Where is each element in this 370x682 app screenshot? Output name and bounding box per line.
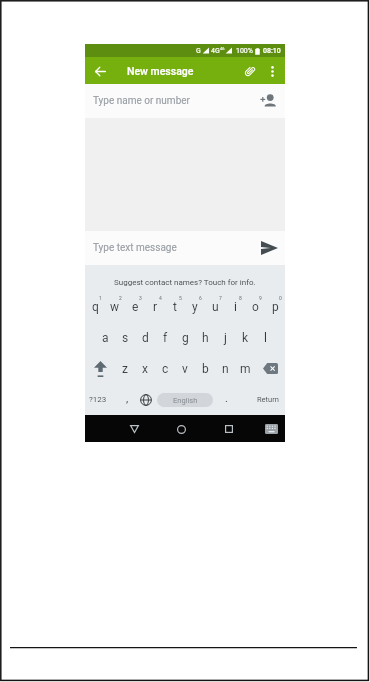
button[interactable]: u (205, 291, 225, 322)
staticText: G (196, 47, 201, 55)
staticText: w (110, 300, 120, 314)
staticText: o (252, 300, 259, 314)
staticText: z (122, 362, 128, 376)
staticText: 08:10 (263, 47, 281, 55)
staticText: Suggest contact names? Touch for info. (114, 278, 256, 287)
button[interactable]: English (157, 393, 213, 407)
button[interactable]: x (135, 353, 155, 384)
staticText: Type name or number (93, 95, 190, 107)
button[interactable] (265, 64, 279, 78)
button[interactable]: j (215, 322, 235, 353)
button[interactable]: l (255, 322, 275, 353)
staticText: 7 (219, 295, 222, 301)
button[interactable]: p (265, 291, 285, 322)
staticText: 100% (236, 47, 253, 55)
button[interactable] (259, 92, 277, 110)
staticText: d (142, 331, 149, 345)
button[interactable]: g (175, 322, 195, 353)
button[interactable]: Type name or number (85, 84, 285, 118)
button[interactable]: Type text message (85, 231, 285, 265)
staticText: b (202, 362, 209, 376)
button[interactable]: n (215, 353, 235, 384)
staticText: u (212, 300, 219, 314)
staticText: e (132, 300, 139, 314)
button[interactable] (126, 421, 142, 437)
button[interactable]: t (165, 291, 185, 322)
button[interactable]: v (175, 353, 195, 384)
staticText: 8 (239, 295, 242, 301)
button[interactable]: m (235, 353, 255, 384)
staticText: m (240, 362, 251, 376)
button[interactable]: o (245, 291, 265, 322)
staticText: 46 (220, 46, 225, 51)
button[interactable] (221, 421, 237, 437)
staticText: , (126, 391, 129, 404)
staticText: New message (127, 65, 194, 77)
staticText: 3 (139, 295, 142, 301)
staticText: q (92, 300, 99, 314)
button[interactable] (173, 421, 189, 437)
button[interactable]: i (225, 291, 245, 322)
staticText: 4 (159, 295, 162, 301)
button[interactable]: b (195, 353, 215, 384)
staticText: s (122, 331, 129, 345)
button[interactable]: s (115, 322, 135, 353)
button[interactable]: q (85, 291, 105, 322)
staticText: l (264, 331, 267, 345)
button[interactable] (241, 62, 259, 80)
staticText: f (163, 331, 168, 345)
staticText: 4G (211, 47, 220, 55)
staticText: r (153, 300, 158, 314)
staticText: c (162, 362, 169, 376)
staticText: 1 (99, 295, 102, 301)
staticText: 5 (179, 295, 182, 301)
staticText: k (242, 331, 249, 345)
button[interactable] (91, 62, 109, 80)
staticText: ?123 (89, 395, 107, 404)
staticText: 2 (119, 295, 122, 301)
button[interactable]: w (105, 291, 125, 322)
button[interactable]: a (95, 322, 115, 353)
staticText: x (142, 362, 148, 376)
staticText: h (202, 331, 209, 345)
button[interactable]: c (155, 353, 175, 384)
staticText: v (182, 362, 188, 376)
staticText: Return (257, 395, 279, 404)
staticText: 9 (259, 295, 262, 301)
button[interactable] (259, 238, 279, 258)
button[interactable] (263, 421, 279, 437)
button[interactable]: z (115, 353, 135, 384)
staticText: a (102, 331, 109, 345)
staticText: 6 (199, 295, 202, 301)
staticText: 0 (279, 295, 282, 301)
staticText: English (173, 396, 198, 405)
staticText: y (192, 300, 198, 314)
staticText: i (234, 300, 237, 314)
staticText: . (225, 391, 229, 404)
button[interactable]: y (185, 291, 205, 322)
staticText: p (272, 300, 279, 314)
button[interactable]: e (125, 291, 145, 322)
staticText: Type text message (93, 242, 177, 254)
staticText: g (182, 331, 189, 345)
button[interactable]: h (195, 322, 215, 353)
staticText: t (173, 300, 177, 314)
button[interactable]: k (235, 322, 255, 353)
staticText: j (224, 331, 227, 345)
button[interactable]: f (155, 322, 175, 353)
button[interactable] (255, 353, 285, 384)
button[interactable]: d (135, 322, 155, 353)
button[interactable]: r (145, 291, 165, 322)
button[interactable] (85, 353, 115, 384)
staticText: n (222, 362, 229, 376)
